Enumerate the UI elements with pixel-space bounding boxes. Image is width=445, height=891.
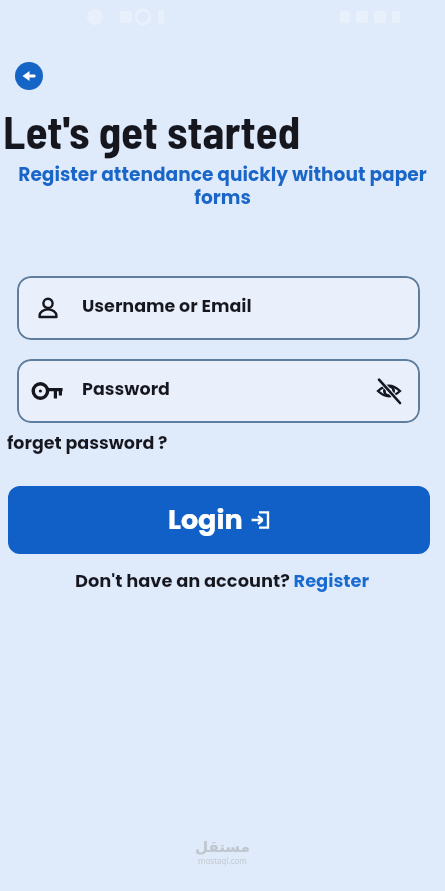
button[interactable]: Login <box>8 486 430 554</box>
staticText: mostaql.com <box>198 855 247 866</box>
staticText: Login <box>168 501 243 539</box>
staticText: forget password ? <box>7 431 168 456</box>
button[interactable] <box>376 378 402 404</box>
staticText: Register attendance quickly without pape… <box>0 161 445 210</box>
staticText: مستقل <box>195 838 250 855</box>
staticText: Let's get started <box>3 104 301 158</box>
staticText: Password <box>82 377 171 402</box>
button[interactable]: Username or Email <box>17 276 420 340</box>
staticText: Username or Email <box>82 294 252 319</box>
button[interactable]: Password <box>17 359 420 423</box>
button[interactable]: Don't have an account? Register <box>75 568 370 593</box>
button[interactable] <box>15 62 43 90</box>
